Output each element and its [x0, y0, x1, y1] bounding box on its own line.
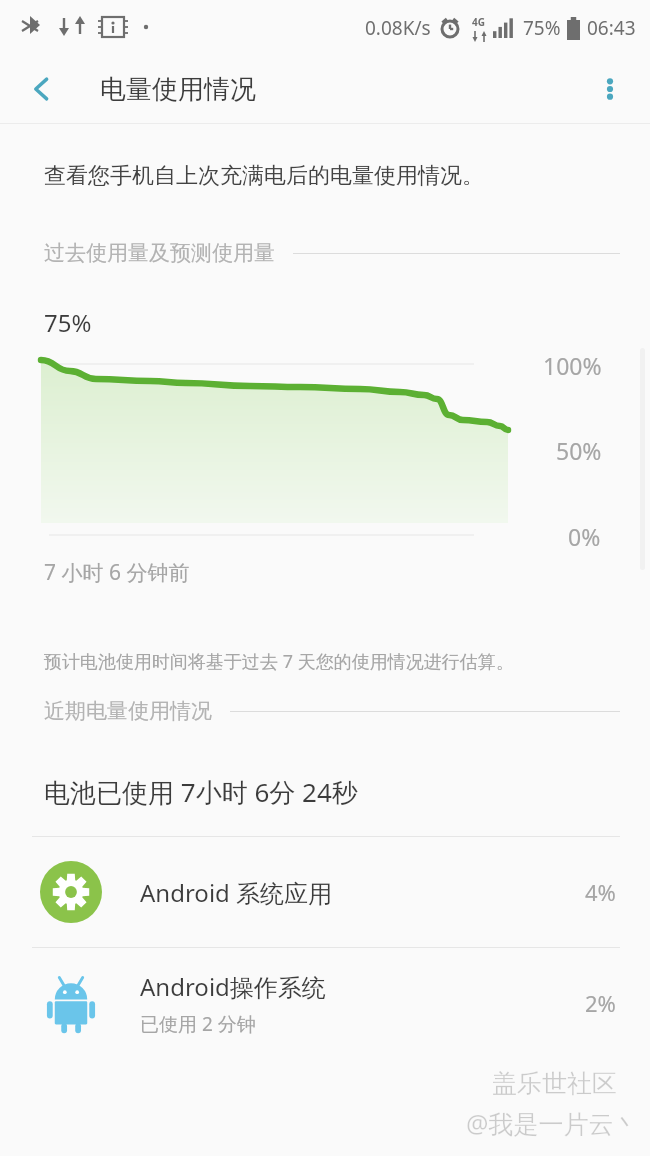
- staticText: 2%: [585, 988, 616, 1018]
- staticText: 电量使用情况: [100, 73, 256, 106]
- staticText: 06:43: [587, 15, 636, 41]
- staticText: 50%: [556, 435, 602, 466]
- button[interactable]: Android操作系统: [0, 948, 650, 1058]
- staticText: 7 小时 6 分钟前: [44, 558, 190, 587]
- staticText: 100%: [543, 350, 602, 381]
- staticText: 过去使用量及预测使用量: [44, 240, 275, 266]
- staticText: 75%: [44, 306, 92, 339]
- staticText: 75%: [523, 15, 561, 41]
- staticText: 盖乐世社区: [492, 1068, 617, 1099]
- staticText: 已使用 2 分钟: [140, 1011, 256, 1037]
- button[interactable]: Back: [14, 61, 70, 117]
- staticText: 4%: [585, 877, 616, 907]
- button[interactable]: More options: [582, 61, 638, 117]
- staticText: Android操作系统: [140, 970, 326, 1003]
- staticText: 查看您手机自上次充满电后的电量使用情况。: [44, 162, 484, 190]
- staticText: Android 系统应用: [140, 876, 333, 909]
- staticText: @我是一片云丶: [466, 1106, 639, 1140]
- staticText: 近期电量使用情况: [44, 698, 212, 724]
- staticText: 4G: [472, 15, 485, 29]
- staticText: 0.08K/s: [365, 15, 431, 41]
- staticText: 电池已使用 7小时 6分 24秒: [44, 774, 358, 810]
- staticText: 预计电池使用时间将基于过去 7 天您的使用情况进行估算。: [44, 649, 514, 674]
- button[interactable]: Android 系统应用: [0, 837, 650, 947]
- staticText: 0%: [568, 521, 601, 552]
